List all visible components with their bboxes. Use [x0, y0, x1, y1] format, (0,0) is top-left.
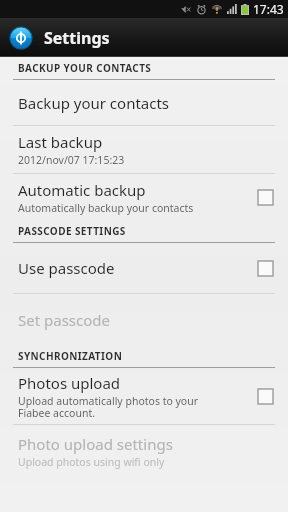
staticText: Set passcode	[18, 310, 110, 330]
button[interactable]: Backup your contacts	[0, 80, 288, 125]
button[interactable]: Photo upload settings	[0, 425, 288, 477]
staticText: Photos upload	[18, 373, 121, 393]
staticText: Upload automatically photos to your Fiab…	[18, 394, 199, 420]
staticText: Settings	[44, 27, 110, 49]
staticText: BACKUP YOUR CONTACTS	[18, 61, 152, 75]
staticText: 17:43	[253, 1, 284, 17]
staticText: Automatic backup	[18, 180, 146, 200]
button[interactable]: Automatic backup	[0, 174, 288, 220]
staticText: Upload photos using wifi only	[18, 455, 165, 469]
staticText: 2012/nov/07 17:15:23	[18, 153, 125, 167]
staticText: Last backup	[18, 132, 103, 152]
button[interactable]: Last backup	[0, 126, 288, 173]
staticText: Backup your contacts	[18, 93, 170, 113]
staticText: Photo upload settings	[18, 434, 173, 454]
button[interactable]: Toggle checkbox	[256, 387, 274, 405]
button[interactable]: Toggle checkbox	[256, 259, 274, 277]
staticText: Automatically backup your contacts	[18, 201, 194, 215]
button[interactable]: Set passcode	[0, 294, 288, 345]
staticText: PASSCODE SETTINGS	[18, 224, 126, 238]
button[interactable]: Toggle checkbox	[256, 188, 274, 206]
button[interactable]: Photos upload	[0, 368, 288, 424]
staticText: Use passcode	[18, 258, 115, 278]
button[interactable]: Use passcode	[0, 243, 288, 293]
staticText: SYNCHRONIZATION	[18, 349, 123, 363]
